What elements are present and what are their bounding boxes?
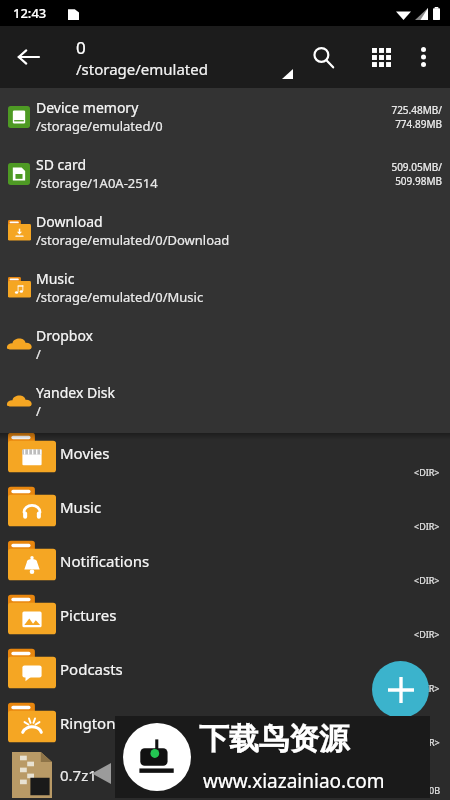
button[interactable]: Podcasts — [0, 642, 450, 696]
button[interactable]: Movies — [0, 426, 450, 480]
button[interactable]: Device memory — [0, 88, 450, 145]
staticText: <DIR> — [414, 466, 440, 478]
button[interactable]: Music — [0, 480, 450, 534]
staticText: Music — [60, 497, 102, 517]
staticText: / — [36, 345, 41, 363]
button[interactable]: SD card — [0, 145, 450, 202]
staticText: 下载鸟资源 — [199, 720, 349, 758]
button[interactable]: Grid view — [357, 33, 405, 81]
staticText: / — [36, 402, 41, 420]
staticText: 774.89MB — [395, 117, 442, 131]
staticText: Device memory — [36, 98, 139, 117]
button[interactable]: Add — [372, 661, 429, 718]
button[interactable]: Dropbox — [0, 316, 450, 373]
staticText: Movies — [60, 443, 110, 463]
staticText: /storage/emulated/0 — [36, 117, 163, 135]
staticText: www.xiazainiao.com — [203, 768, 385, 794]
staticText: 0B — [429, 784, 440, 796]
staticText: <DIR> — [414, 574, 440, 586]
staticText: 12:43 — [13, 4, 47, 22]
staticText: 0.7z1 — [60, 765, 97, 785]
staticText: 509.98MB — [395, 174, 442, 188]
staticText: Dropbox — [36, 326, 94, 345]
staticText: <DIR> — [414, 520, 440, 532]
button[interactable]: Ringtones — [0, 696, 450, 750]
button[interactable]: Back — [0, 29, 56, 85]
staticText: <DIR> — [414, 628, 440, 640]
staticText: SD card — [36, 155, 87, 174]
button[interactable]: Search — [299, 33, 347, 81]
staticText: Yandex Disk — [36, 383, 116, 402]
button[interactable]: 0.7z1 — [0, 750, 450, 800]
staticText: Podcasts — [60, 659, 123, 679]
staticText: /storage/1A0A-2514 — [36, 174, 158, 192]
staticText: 0 — [76, 36, 86, 59]
button[interactable]: Pictures — [0, 588, 450, 642]
staticText: /storage/emulated/0/Download — [36, 231, 230, 249]
staticText: Notifications — [60, 551, 150, 571]
staticText: Music — [36, 269, 75, 288]
button[interactable]: Download — [0, 202, 450, 259]
staticText: Pictures — [60, 605, 117, 625]
staticText: Ringtones — [60, 713, 132, 733]
staticText: /storage/emulated/0/Music — [36, 288, 204, 306]
button[interactable]: Notifications — [0, 534, 450, 588]
staticText: Download — [36, 212, 103, 231]
staticText: <DIR> — [414, 682, 440, 694]
staticText: 725.48MB/ — [391, 103, 442, 117]
staticText: 509.05MB/ — [391, 160, 442, 174]
button[interactable]: More options — [400, 34, 446, 80]
button[interactable]: Music — [0, 259, 450, 316]
staticText: R> — [429, 736, 440, 748]
button[interactable]: Yandex Disk — [0, 373, 450, 430]
staticText: /storage/emulated — [76, 59, 208, 79]
